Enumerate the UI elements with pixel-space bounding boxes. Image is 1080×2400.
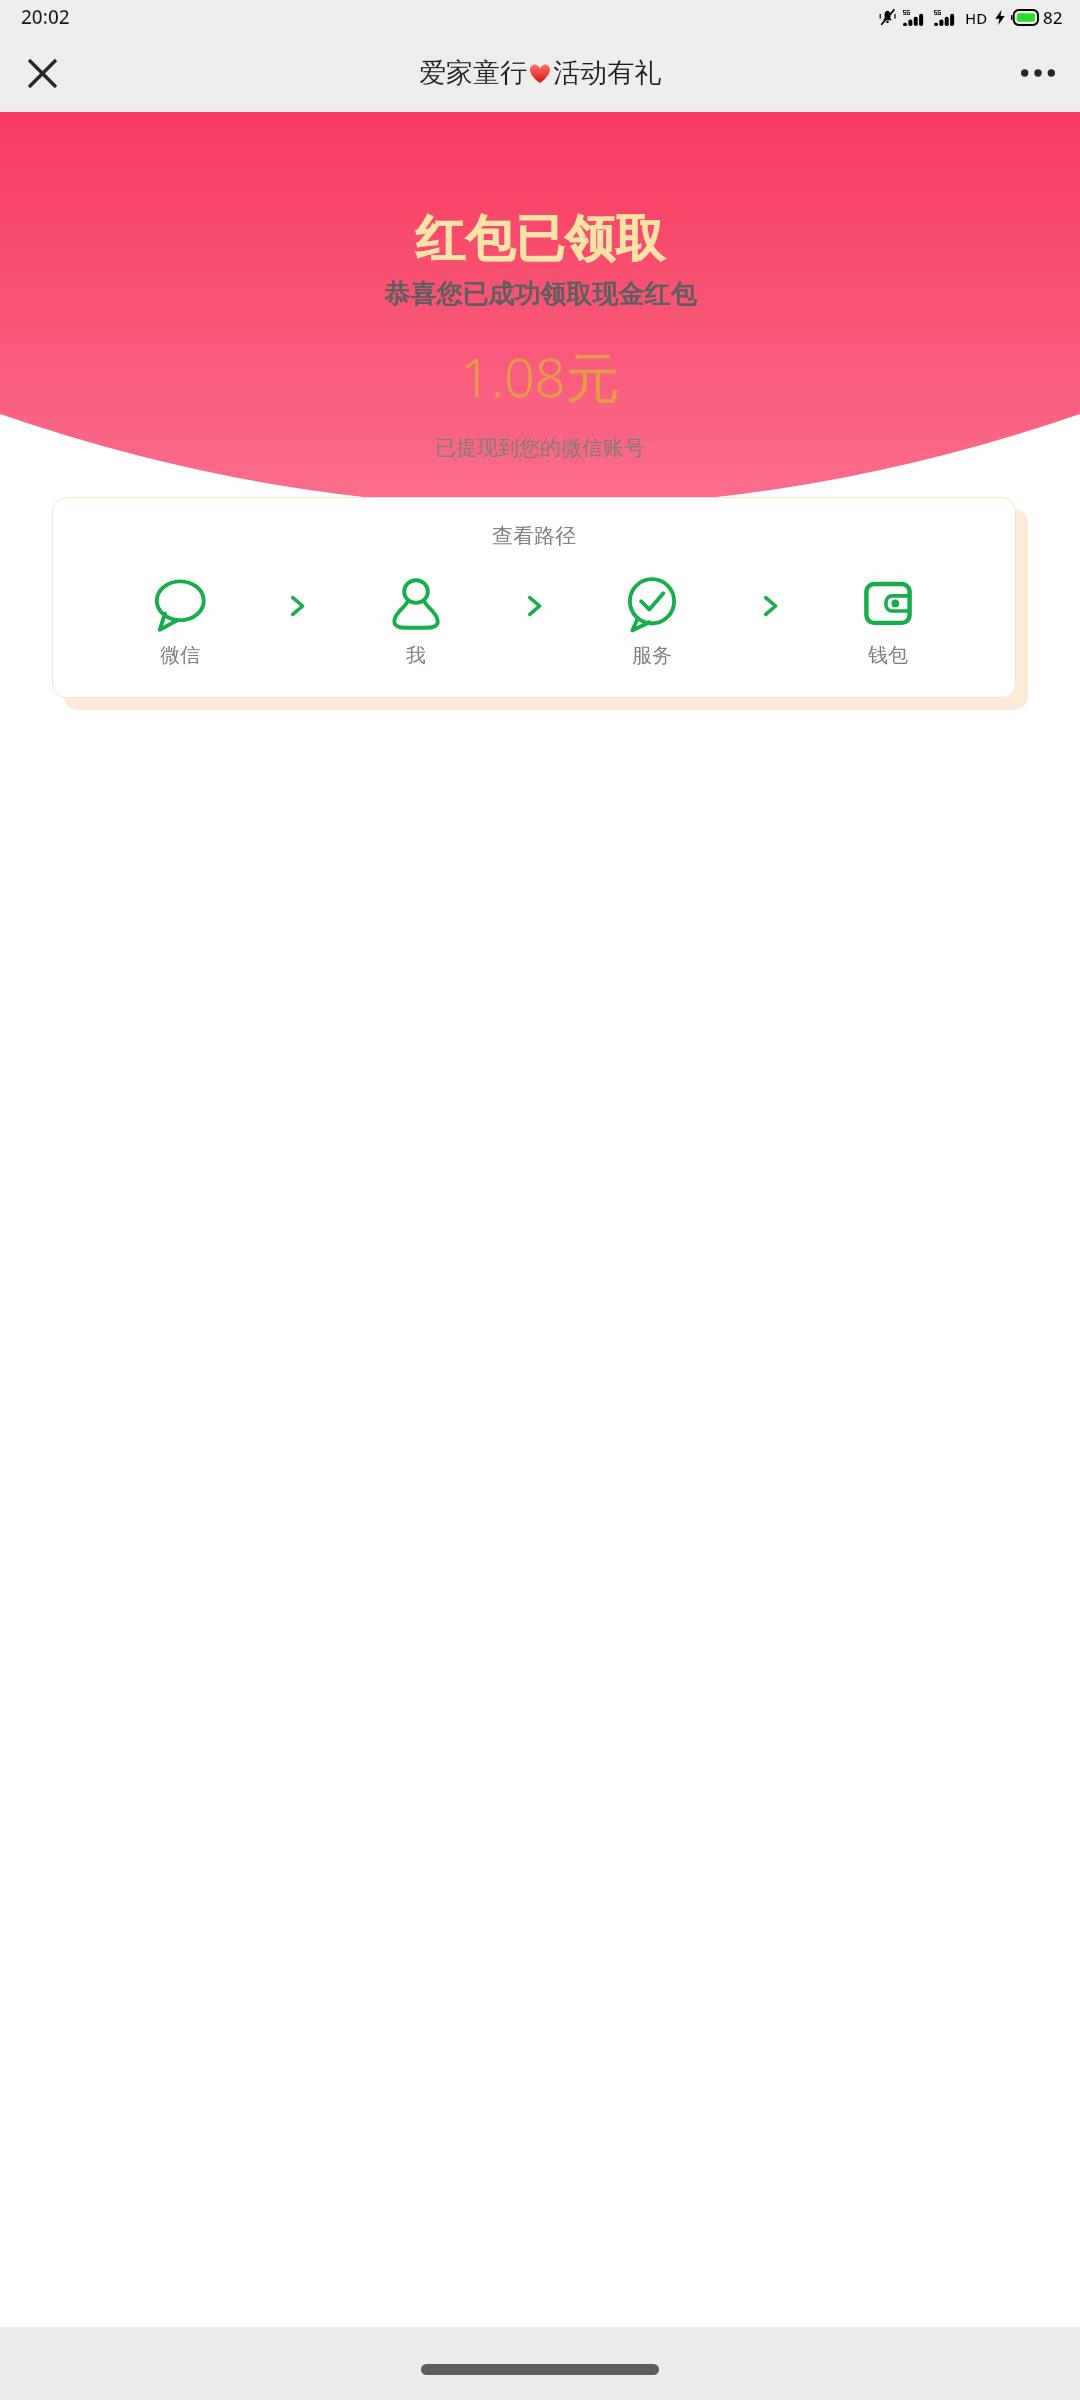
staticText: 微信 xyxy=(160,643,200,668)
staticText: HD xyxy=(965,8,988,28)
button[interactable]: 我 xyxy=(387,577,445,668)
staticText: 查看路径 xyxy=(492,523,576,549)
staticText: 1.08元 xyxy=(460,339,620,413)
button[interactable]: 微信 xyxy=(151,577,209,668)
staticText: 爱家童行 xyxy=(419,56,527,90)
button[interactable]: 钱包 xyxy=(859,577,917,668)
staticText: 已提现到您的微信账号 xyxy=(435,435,645,461)
staticText: 我 xyxy=(406,643,426,668)
staticText: 钱包 xyxy=(868,643,908,668)
staticText: 20:02 xyxy=(21,4,70,30)
staticText: 红包已领取 xyxy=(415,208,665,271)
staticText: 活动有礼 xyxy=(553,56,661,90)
button[interactable]: 服务 xyxy=(623,577,681,668)
staticText: 服务 xyxy=(632,643,672,668)
button[interactable]: 查看路径 xyxy=(52,497,1016,698)
staticText: 82 xyxy=(1043,6,1063,29)
button[interactable]: Home xyxy=(421,2364,659,2375)
button[interactable]: Close xyxy=(12,43,72,103)
button[interactable]: More options xyxy=(1008,43,1068,103)
staticText: 恭喜您已成功领取现金红包 xyxy=(384,278,696,311)
